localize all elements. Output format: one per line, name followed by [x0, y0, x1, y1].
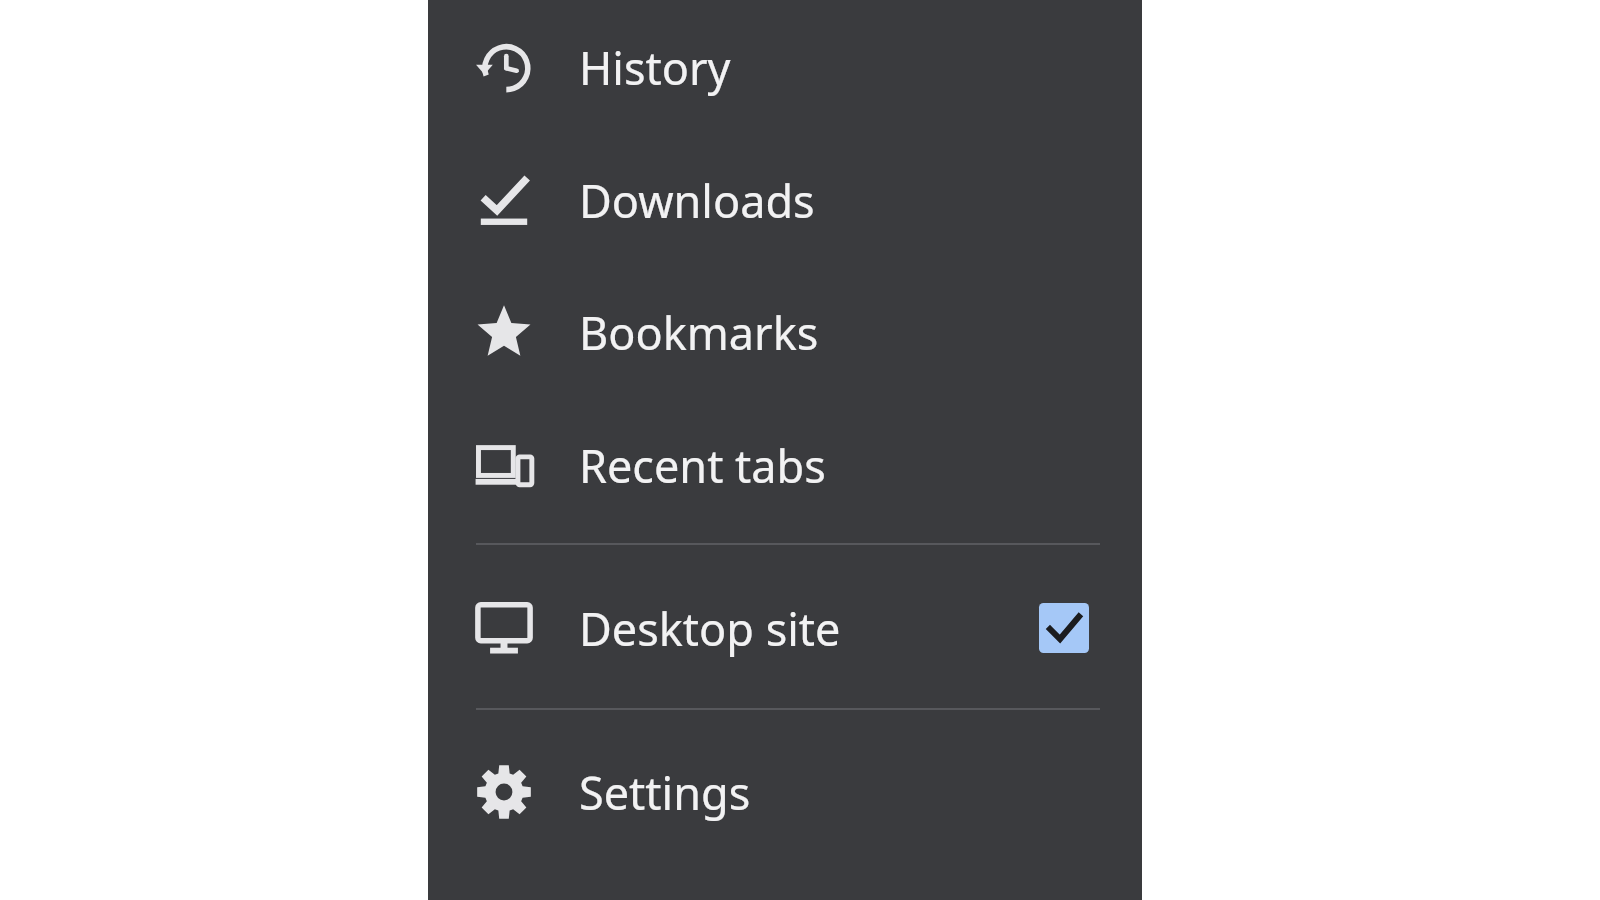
button[interactable]: Recent tabs — [428, 410, 1142, 520]
staticText: Downloads — [579, 170, 815, 231]
staticText: Recent tabs — [579, 435, 826, 496]
button[interactable]: History — [428, 12, 1142, 122]
button[interactable]: Desktop site checkbox, checked — [1038, 602, 1090, 654]
staticText: Settings — [579, 762, 751, 823]
staticText: History — [579, 37, 731, 98]
staticText: Desktop site — [579, 598, 841, 659]
button[interactable]: Downloads — [428, 145, 1142, 255]
button[interactable]: Settings — [428, 737, 1142, 847]
button[interactable]: Bookmarks — [428, 277, 1142, 387]
button[interactable]: Desktop site — [428, 573, 1142, 683]
staticText: Bookmarks — [579, 302, 819, 363]
